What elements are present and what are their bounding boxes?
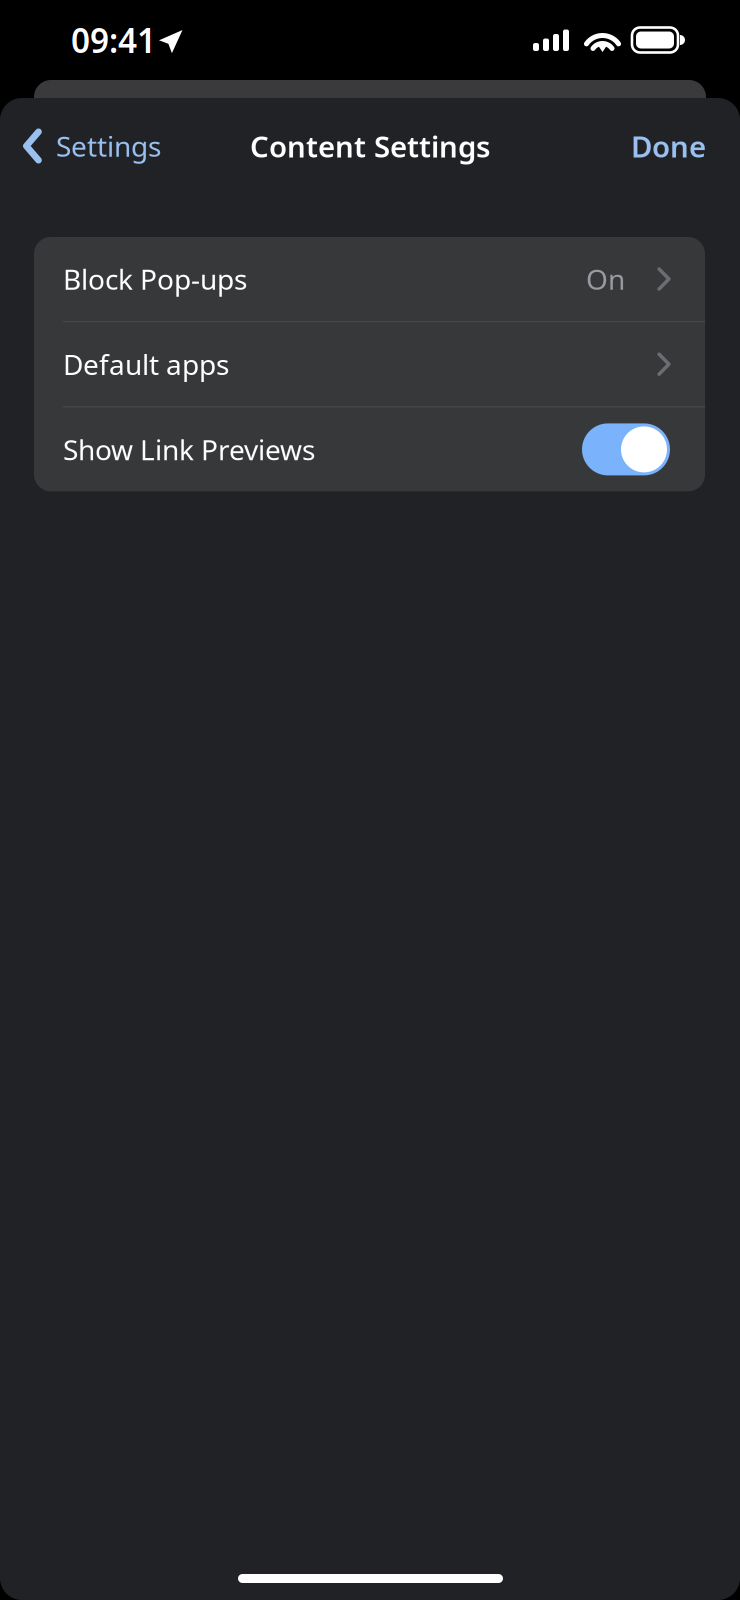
staticText: Block Pop-ups — [63, 260, 247, 298]
staticText: 09:41 — [71, 18, 156, 62]
button[interactable]: Block Pop-ups — [34, 237, 705, 321]
button[interactable]: Back to Settings — [0, 113, 175, 179]
staticText: Done — [631, 126, 706, 165]
button[interactable]: Show Link Previews — [34, 407, 705, 491]
staticText: Content Settings — [250, 126, 490, 165]
button[interactable]: Default apps — [34, 322, 705, 406]
button[interactable]: Done — [613, 112, 740, 179]
staticText: Show Link Previews — [63, 431, 315, 468]
staticText: On — [586, 260, 625, 298]
staticText: Settings — [56, 127, 161, 165]
staticText: Default apps — [63, 346, 229, 383]
